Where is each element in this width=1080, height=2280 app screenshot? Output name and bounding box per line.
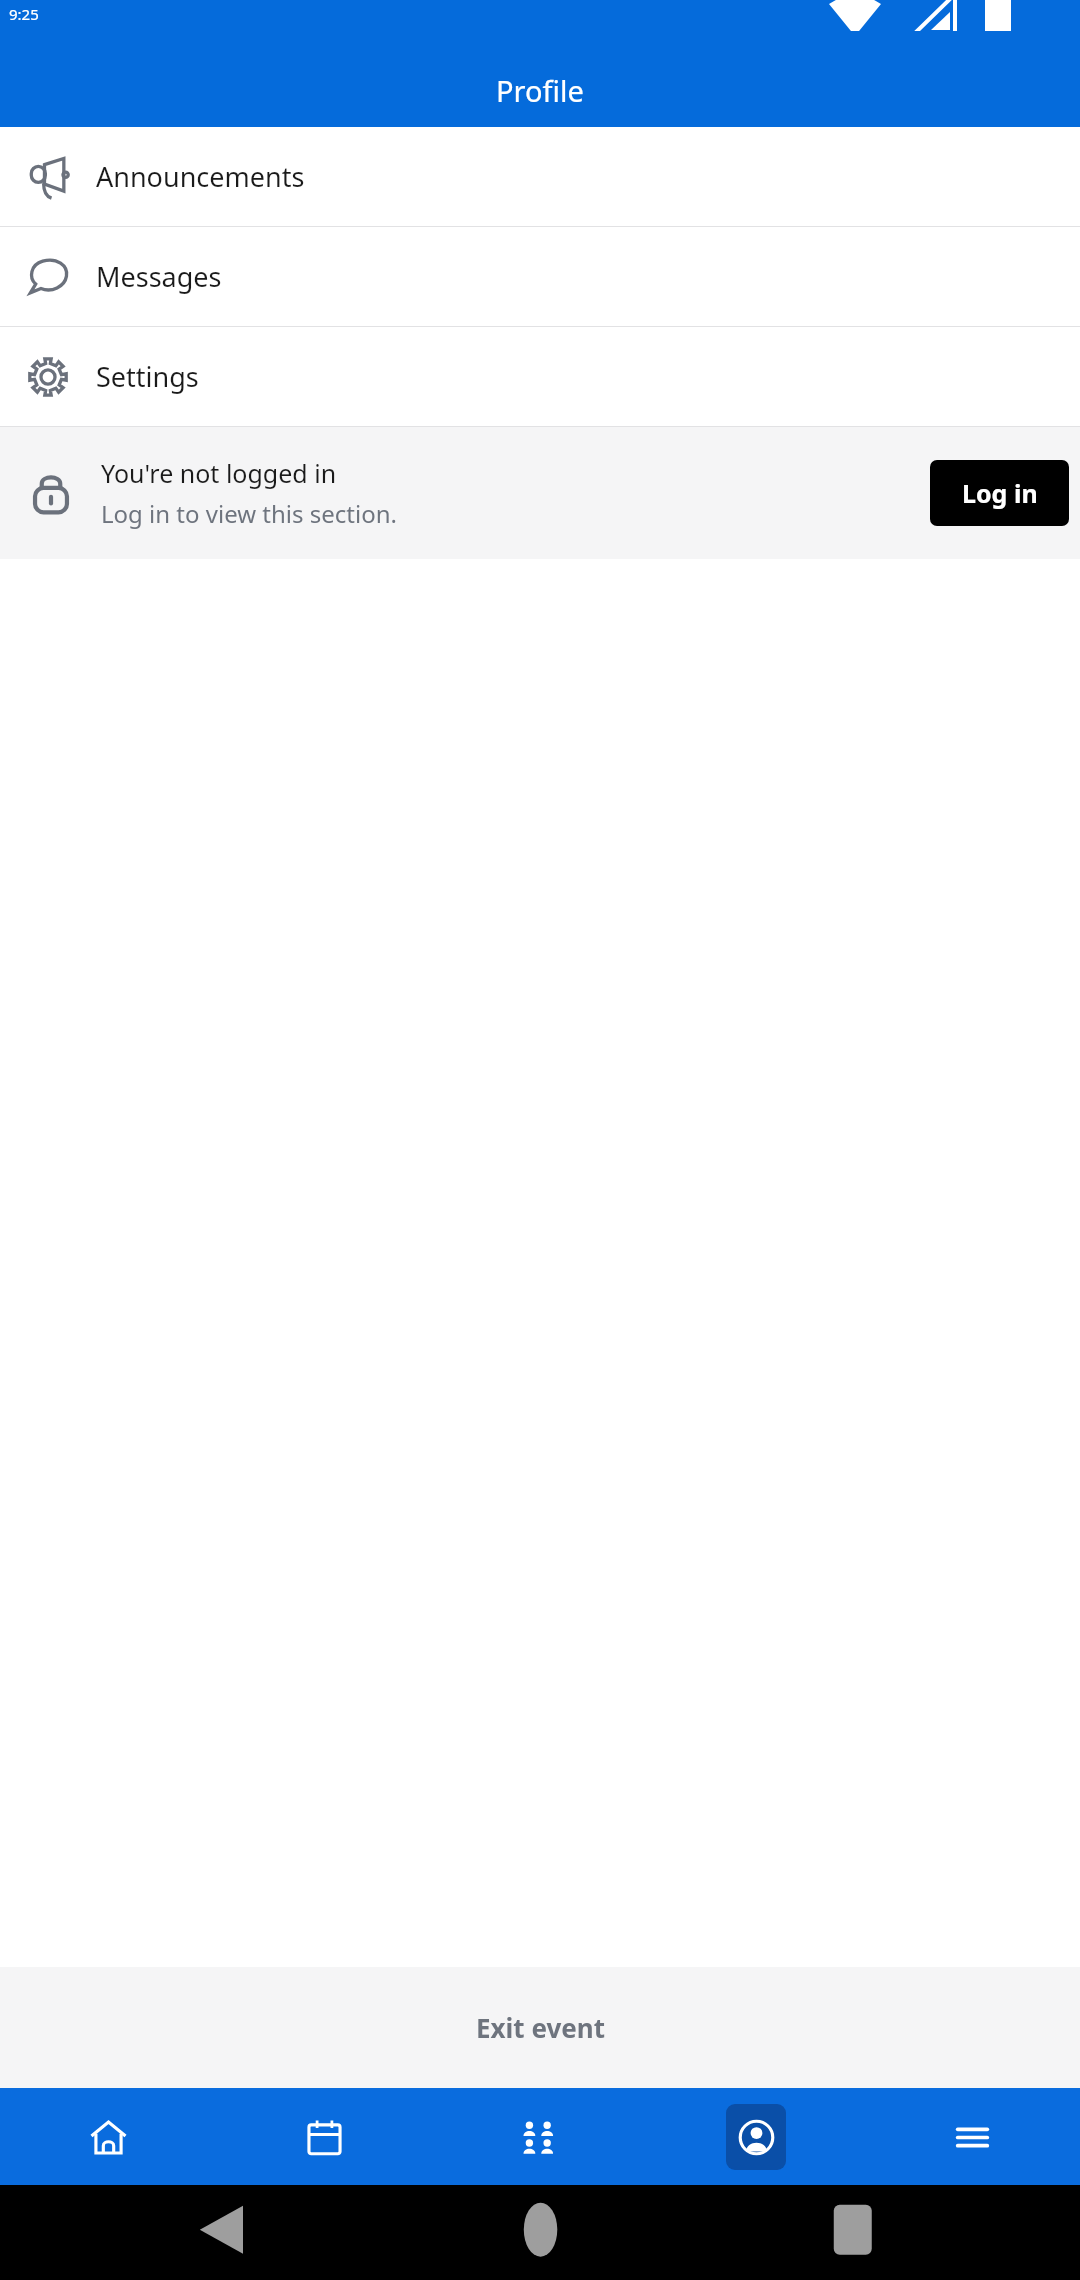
button[interactable]: Attendees (432, 2088, 648, 2185)
staticText: Exit event (476, 2010, 605, 2045)
staticText: Messages (96, 258, 222, 295)
staticText: Settings (96, 358, 199, 395)
staticText: You're not logged in (101, 456, 337, 490)
button[interactable]: Profile (648, 2088, 864, 2185)
button[interactable]: Log in (930, 460, 1069, 526)
button[interactable]: Home (0, 2088, 216, 2185)
button[interactable]: Messages (0, 227, 1080, 326)
staticText: Announcements (96, 158, 305, 195)
button[interactable]: Agenda (216, 2088, 432, 2185)
button[interactable]: More (864, 2088, 1080, 2185)
staticText: 9:25 (9, 4, 39, 24)
staticText: Log in (962, 476, 1038, 510)
staticText: Profile (496, 71, 584, 110)
staticText: Log in to view this section. (101, 497, 397, 530)
button[interactable]: Announcements (0, 127, 1080, 226)
button[interactable]: Settings (0, 327, 1080, 426)
button[interactable]: Exit event (0, 1967, 1080, 2088)
